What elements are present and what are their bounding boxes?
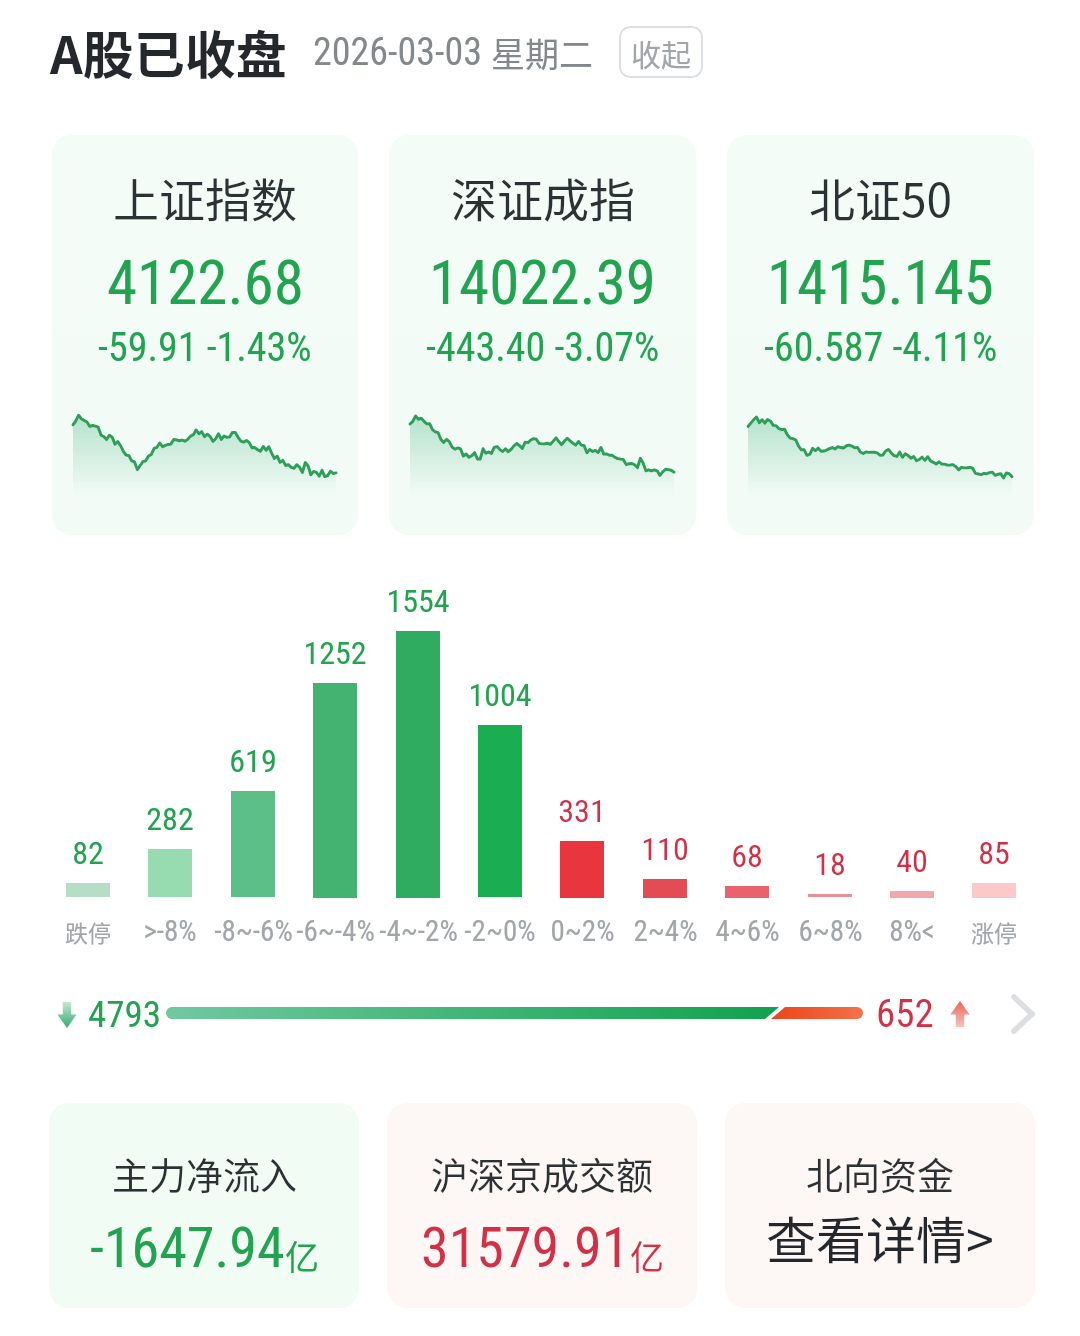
staticText: -6~-4%: [296, 914, 375, 948]
button[interactable]: 北证50: [727, 135, 1034, 535]
staticText: -1647.94: [90, 1215, 285, 1281]
staticText: 0~2%: [550, 914, 615, 948]
staticText: 亿: [630, 1231, 664, 1280]
staticText: -8~-6%: [214, 914, 293, 948]
staticText: -59.91 -1.43%: [98, 324, 312, 371]
button[interactable]: 深证成指: [389, 135, 696, 535]
button[interactable]: More details: [993, 984, 1053, 1044]
staticText: 主力净流入: [112, 1147, 297, 1201]
staticText: 8%<: [889, 914, 935, 948]
staticText: -60.587 -4.11%: [764, 324, 998, 371]
button[interactable]: [212, 580, 294, 952]
button[interactable]: 4793: [40, 988, 220, 1040]
button[interactable]: 652: [870, 988, 990, 1040]
button[interactable]: [953, 580, 1035, 952]
staticText: 上证指数: [113, 164, 297, 231]
button[interactable]: [706, 580, 788, 952]
button[interactable]: [294, 580, 376, 952]
staticText: 14022.39: [429, 247, 656, 318]
staticText: 北证50: [809, 164, 953, 231]
staticText: 282: [146, 800, 194, 838]
staticText: 110: [641, 830, 689, 868]
staticText: 18: [814, 845, 846, 883]
staticText: 85: [978, 834, 1010, 872]
button[interactable]: 沪深京成交额: [387, 1103, 697, 1308]
staticText: 4122.68: [107, 247, 304, 318]
button[interactable]: 收起: [619, 26, 703, 78]
staticText: 31579.91: [421, 1215, 630, 1281]
staticText: 619: [229, 742, 277, 780]
staticText: -443.40 -3.07%: [426, 324, 660, 371]
staticText: 2026-03-03: [313, 30, 491, 75]
staticText: 1554: [386, 582, 450, 620]
staticText: 北向资金: [806, 1147, 954, 1201]
staticText: 星期二: [491, 28, 593, 77]
staticText: A股已收盘: [50, 15, 287, 89]
staticText: 1252: [303, 634, 367, 672]
staticText: 82: [72, 834, 104, 872]
staticText: 收起: [631, 31, 691, 74]
staticText: 深证成指: [451, 164, 635, 231]
staticText: 4793: [88, 993, 162, 1036]
staticText: 68: [731, 837, 763, 875]
staticText: 652: [876, 991, 934, 1037]
staticText: 1415.145: [767, 247, 994, 318]
button[interactable]: [624, 580, 706, 952]
staticText: 1004: [468, 676, 532, 714]
staticText: 331: [558, 792, 606, 830]
button[interactable]: 上证指数: [52, 135, 358, 535]
button[interactable]: [541, 580, 623, 952]
staticText: -4~-2%: [379, 914, 458, 948]
staticText: >-8%: [143, 914, 197, 948]
staticText: 亿: [285, 1231, 319, 1280]
button[interactable]: [459, 580, 541, 952]
button[interactable]: [871, 580, 953, 952]
staticText: 40: [896, 842, 928, 880]
button[interactable]: [789, 580, 871, 952]
staticText: -2~0%: [464, 914, 536, 948]
staticText: 6~8%: [798, 914, 863, 948]
button[interactable]: [129, 580, 211, 952]
staticText: 跌停: [65, 915, 111, 948]
button[interactable]: [47, 580, 129, 952]
staticText: 查看详情>: [766, 1201, 994, 1273]
staticText: 涨停: [971, 915, 1017, 948]
staticText: 4~6%: [715, 914, 780, 948]
staticText: 沪深京成交额: [431, 1147, 653, 1201]
staticText: 2~4%: [633, 914, 698, 948]
button[interactable]: [377, 580, 459, 952]
button[interactable]: 北向资金: [725, 1103, 1035, 1308]
button[interactable]: 主力净流入: [49, 1103, 359, 1308]
